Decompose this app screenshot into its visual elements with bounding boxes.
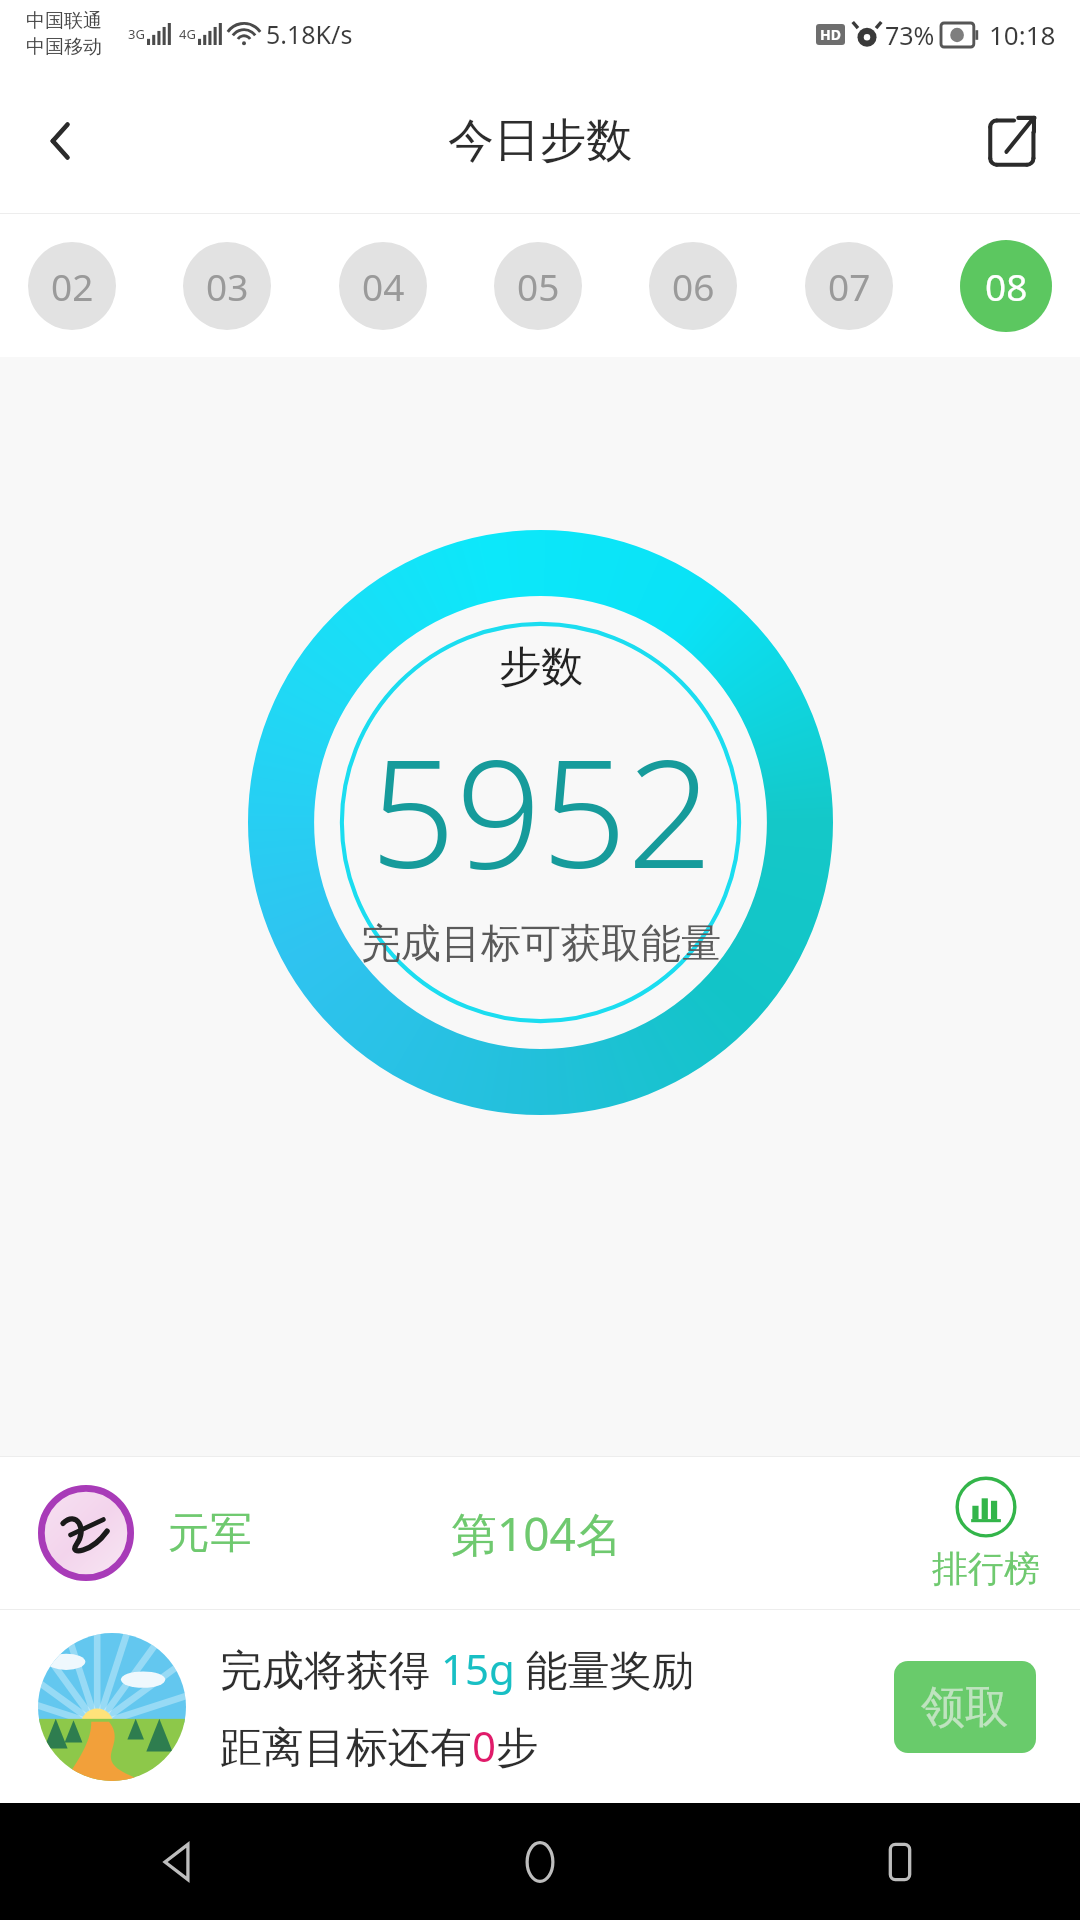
- button[interactable]: Share: [966, 93, 1062, 189]
- button[interactable]: Back: [0, 1803, 360, 1920]
- button[interactable]: 04: [339, 242, 427, 330]
- staticText: 73%: [885, 18, 935, 52]
- button[interactable]: 排行榜: [932, 1476, 1040, 1591]
- staticText: 5952: [370, 708, 713, 912]
- button[interactable]: 领取: [894, 1661, 1036, 1753]
- staticText: 中国联通: [26, 9, 102, 33]
- button[interactable]: 06: [649, 242, 737, 330]
- staticText: 5.18K/s: [266, 17, 353, 51]
- staticText: 中国移动: [26, 35, 102, 59]
- staticText: 05: [517, 261, 560, 311]
- button[interactable]: Recents: [720, 1803, 1080, 1920]
- staticText: 完成将获得 15g 能量奖励: [220, 1640, 694, 1697]
- staticText: 10:18: [989, 17, 1056, 52]
- staticText: 03: [206, 261, 249, 311]
- button[interactable]: 07: [805, 242, 893, 330]
- staticText: 完成目标可获取能量: [361, 918, 721, 968]
- staticText: 4G: [179, 25, 196, 43]
- button[interactable]: 02: [28, 242, 116, 330]
- staticText: 元军: [168, 1507, 252, 1560]
- button[interactable]: 03: [183, 242, 271, 330]
- staticText: 距离目标还有0步: [220, 1717, 539, 1774]
- staticText: 今日步数: [448, 112, 632, 170]
- button[interactable]: Home: [360, 1803, 720, 1920]
- button[interactable]: Back: [14, 93, 110, 189]
- staticText: 02: [51, 261, 94, 311]
- staticText: 领取: [921, 1680, 1009, 1735]
- staticText: 04: [362, 261, 405, 311]
- staticText: 步数: [499, 641, 583, 694]
- button[interactable]: 08: [960, 240, 1052, 332]
- staticText: 08: [985, 261, 1028, 311]
- staticText: 07: [828, 261, 871, 311]
- staticText: 排行榜: [932, 1546, 1040, 1591]
- staticText: HD: [820, 25, 841, 44]
- staticText: 3G: [128, 25, 145, 43]
- staticText: 第104名: [451, 1502, 622, 1565]
- staticText: 06: [672, 261, 715, 311]
- button[interactable]: 05: [494, 242, 582, 330]
